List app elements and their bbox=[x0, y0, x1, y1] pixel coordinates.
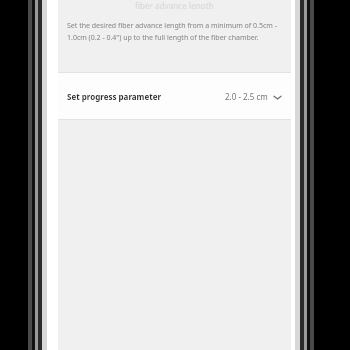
other: Open dropdown bbox=[272, 92, 282, 102]
staticText: 2.0 - 2.5 cm bbox=[225, 91, 268, 102]
button[interactable]: Set progress parameter bbox=[58, 73, 291, 119]
staticText: Set progress parameter bbox=[67, 91, 162, 102]
staticText: Set the desired fiber advance length fro… bbox=[67, 21, 282, 42]
staticText: fiber advance length bbox=[135, 0, 214, 9]
